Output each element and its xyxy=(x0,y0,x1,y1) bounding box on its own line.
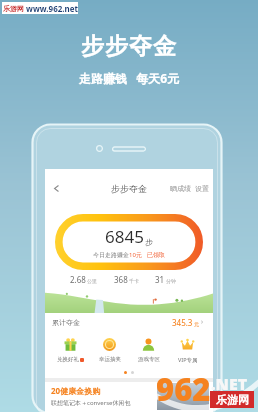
staticText: 已领取 xyxy=(147,251,165,259)
staticText: 2.68 xyxy=(70,274,86,285)
button[interactable]: VIP专属 xyxy=(168,337,207,363)
staticText: 31 xyxy=(155,274,165,285)
staticText: 分钟 xyxy=(166,278,176,284)
staticText: 962 xyxy=(156,368,211,410)
button[interactable]: 幸运抽奖 xyxy=(90,337,129,363)
staticText: 今日走路赚金 xyxy=(93,251,129,259)
button[interactable]: 设置 xyxy=(194,184,210,193)
staticText: 6845 xyxy=(105,225,144,248)
button[interactable]: 晒成绩 xyxy=(169,184,192,193)
staticText: 步步夺金 xyxy=(111,183,147,194)
staticText: 乐游网 xyxy=(3,4,24,13)
staticText: 公里 xyxy=(87,278,97,284)
staticText: 步步夺金 xyxy=(0,32,258,61)
staticText: 10元 xyxy=(129,251,142,259)
staticText: 累计夺金 xyxy=(52,318,80,327)
staticText: www.962.net xyxy=(24,3,78,14)
staticText: 兑换好礼 xyxy=(57,356,79,363)
staticText: 368 xyxy=(114,274,128,285)
staticText: 千卡 xyxy=(129,278,139,284)
staticText: VIP专属 xyxy=(178,356,198,363)
button[interactable]: 游戏专区 xyxy=(129,337,168,363)
staticText: 345.3 xyxy=(172,317,193,328)
staticText: .NET xyxy=(211,373,248,395)
staticText: 步 xyxy=(145,237,153,247)
button[interactable]: 兑换好礼 xyxy=(51,337,90,363)
staticText: 游戏专区 xyxy=(138,356,160,363)
staticText: 走路赚钱 每天6元 xyxy=(0,70,258,86)
button[interactable]: 累计夺金 xyxy=(52,314,204,330)
staticText: › xyxy=(201,317,204,327)
staticText: 20健康金换购 xyxy=(51,385,101,396)
staticText: 幸运抽奖 xyxy=(99,356,121,363)
staticText: 元 xyxy=(194,321,199,327)
button[interactable]: 返回 xyxy=(47,179,65,197)
button[interactable]: 20健康金换购 xyxy=(45,382,213,412)
staticText: 联想笔记本＋converse休闲包 xyxy=(51,399,131,407)
staticText: 乐游网 xyxy=(216,393,249,407)
